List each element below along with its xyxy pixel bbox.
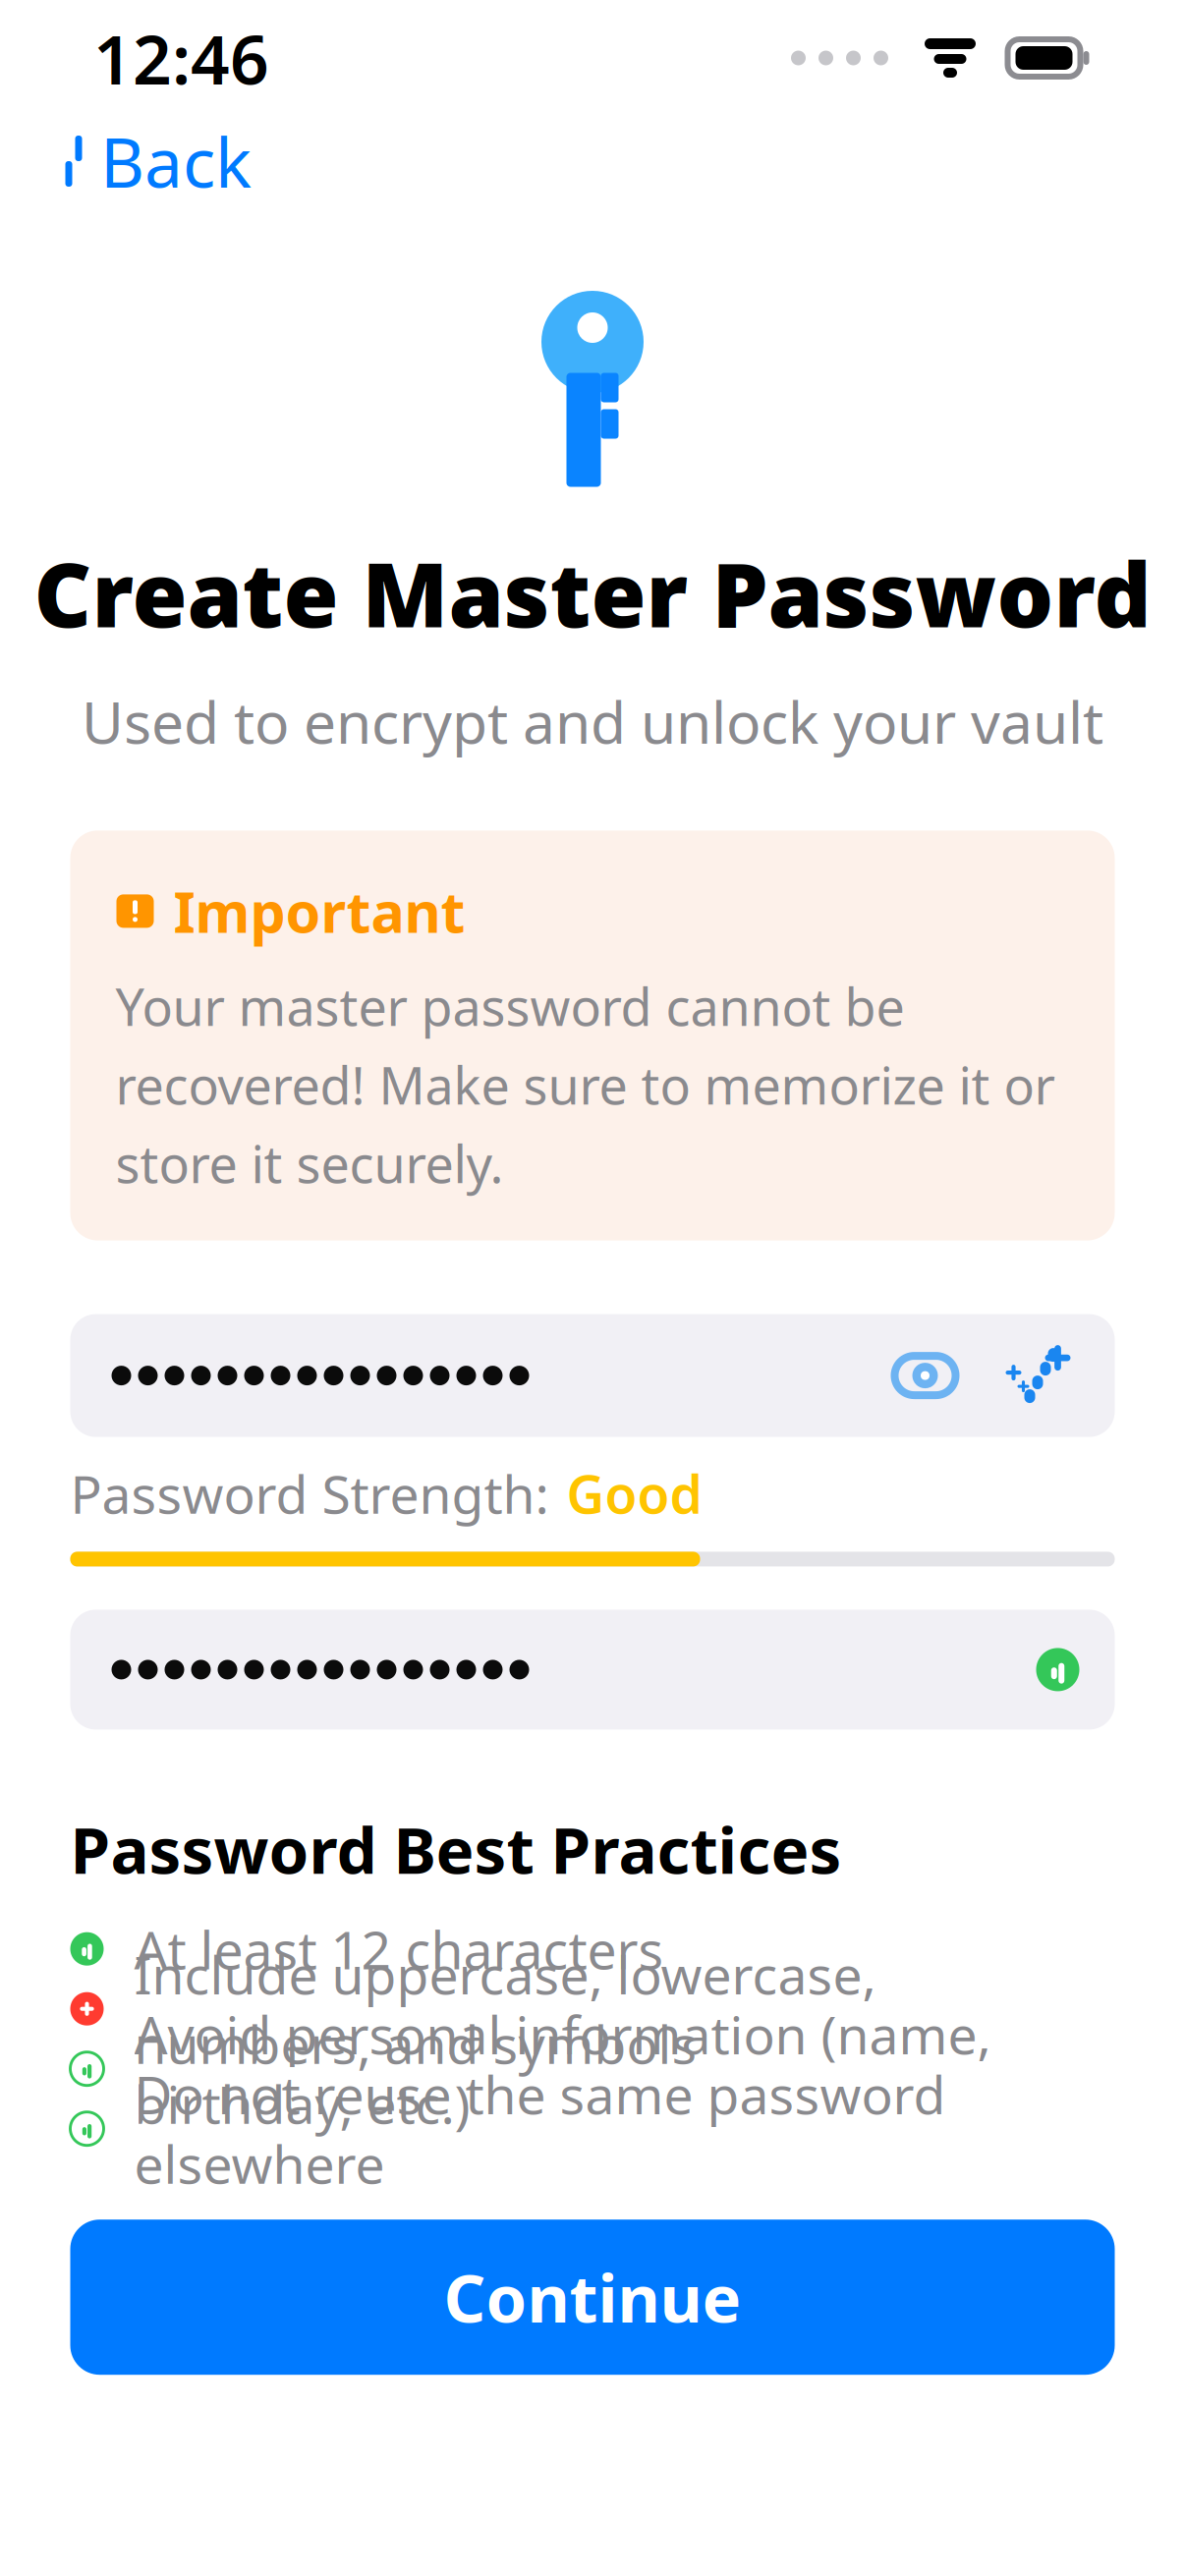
button[interactable]: Show password (883, 1336, 967, 1415)
button[interactable]: Back (0, 102, 275, 220)
staticText: Password Best Practices (70, 1806, 842, 1891)
staticText: 12:46 (93, 13, 269, 103)
staticText: Password Strength: (70, 1459, 549, 1528)
button[interactable]: Generate password (997, 1331, 1079, 1420)
staticText: Important (173, 874, 465, 948)
staticText: Your master password cannot be recovered… (115, 972, 1055, 1197)
staticText: Create Master Password (34, 533, 1151, 652)
staticText: Back (100, 116, 252, 206)
staticText: Do not reuse the same password elsewhere (134, 2059, 946, 2198)
staticText: At least 12 characters (134, 1914, 664, 1984)
staticText: Include uppercase, lowercase, numbers, a… (134, 1939, 876, 2078)
staticText: Good (566, 1459, 702, 1528)
staticText: Used to encrypt and unlock your vault (82, 683, 1103, 760)
button[interactable]: Continue (70, 2220, 1115, 2375)
staticText: Continue (444, 2254, 741, 2341)
staticText: Avoid personal information (name, birthd… (134, 1999, 991, 2138)
